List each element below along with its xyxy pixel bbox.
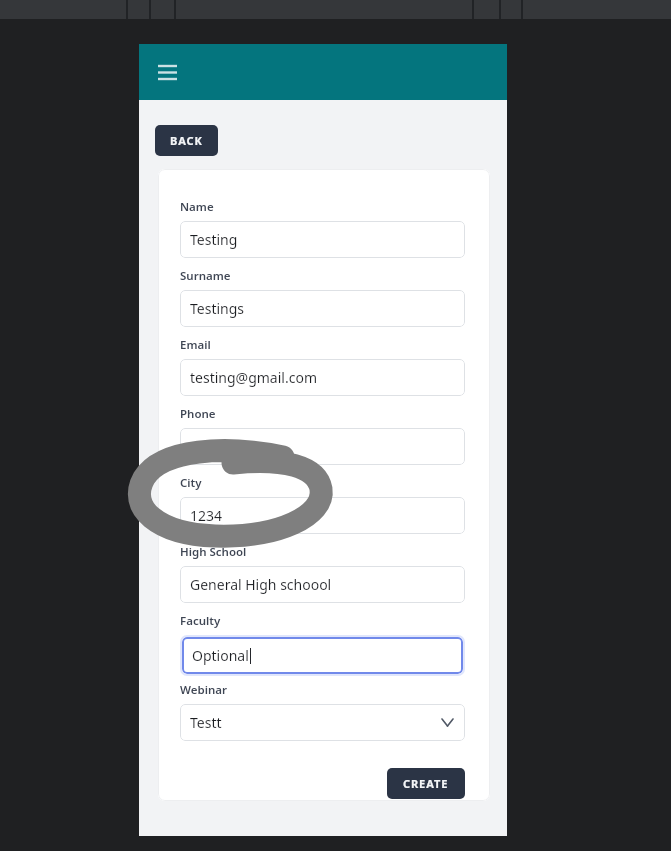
button[interactable]: Testings xyxy=(180,290,465,327)
staticText: General High schoool xyxy=(190,575,332,594)
button[interactable]: Testing xyxy=(180,221,465,258)
staticText: Testings xyxy=(190,299,245,318)
button[interactable]: CREATE xyxy=(387,768,465,799)
staticText: Surname xyxy=(180,268,231,284)
button[interactable]: Optional xyxy=(182,637,463,674)
staticText: Testt xyxy=(190,713,222,732)
button[interactable]: General High schoool xyxy=(180,566,465,603)
button[interactable]: 0900230 xyxy=(180,428,465,465)
staticText: Name xyxy=(180,199,214,215)
staticText: Phone xyxy=(180,406,216,422)
button[interactable]: Open navigation menu xyxy=(150,55,184,89)
staticText: City xyxy=(180,475,202,491)
button[interactable]: 1234 xyxy=(180,497,465,534)
staticText: Email xyxy=(180,337,211,353)
button[interactable]: testing@gmail.com xyxy=(180,359,465,396)
button[interactable]: Testt xyxy=(180,704,465,741)
staticText: 1234 xyxy=(190,506,223,525)
staticText: 0900230 xyxy=(190,437,247,456)
button[interactable]: BACK xyxy=(155,125,218,156)
staticText: BACK xyxy=(170,133,203,148)
staticText: High School xyxy=(180,544,247,560)
staticText: Optional xyxy=(192,646,249,665)
staticText: Webinar xyxy=(180,682,227,698)
staticText: testing@gmail.com xyxy=(190,368,317,387)
staticText: Testing xyxy=(190,230,238,249)
staticText: CREATE xyxy=(403,776,449,791)
staticText: Faculty xyxy=(180,613,221,629)
